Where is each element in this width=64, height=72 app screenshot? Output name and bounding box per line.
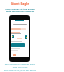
staticText: Earn fuelperks! rewards every time you s… (3, 63, 37, 72)
staticText: Giant Eagle (2, 1, 38, 5)
staticText: Save money at the pump with fuelperks! r… (4, 7, 36, 13)
